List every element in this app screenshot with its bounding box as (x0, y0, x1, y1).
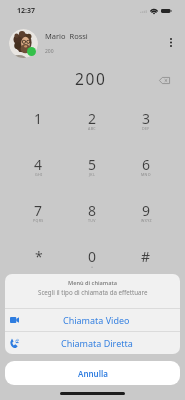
button[interactable]: Chiamata Diretta (5, 332, 180, 354)
staticText: DEF (142, 126, 150, 131)
button[interactable]: 5 (65, 145, 119, 191)
staticText: MNO (141, 172, 151, 177)
button[interactable]: Annulla (5, 361, 180, 385)
staticText: 200 (45, 48, 54, 55)
staticText: Menù di chiamata (68, 279, 118, 287)
staticText: Scegli il tipo di chiamata da effettuare (38, 288, 148, 296)
staticText: 8 (88, 201, 97, 220)
staticText: PQRS (33, 218, 44, 223)
staticText: ABC (88, 126, 96, 131)
staticText: 7 (34, 201, 43, 220)
button[interactable]: 4 (12, 145, 65, 191)
staticText: 12:37 (17, 6, 35, 16)
button[interactable]: 3 (119, 99, 173, 145)
staticText: Chiamata Video (63, 314, 130, 326)
button[interactable]: # (119, 237, 173, 283)
staticText: Chiamata Diretta (61, 337, 133, 349)
staticText: Mario Rossi (45, 31, 88, 41)
staticText: 0 (88, 247, 97, 266)
staticText: GHI (35, 172, 43, 177)
button[interactable]: 9 (119, 191, 173, 237)
button[interactable]: Backspace (157, 73, 171, 87)
button[interactable]: 7 (12, 191, 65, 237)
staticText: JKL (89, 172, 96, 177)
button[interactable]: 2 (65, 99, 119, 145)
staticText: Annulla (78, 368, 108, 379)
button[interactable]: 0 (65, 237, 119, 283)
staticText: 4 (34, 155, 43, 174)
button[interactable]: Chiamata Video (5, 309, 180, 331)
staticText: 5 (88, 155, 97, 174)
staticText: + (91, 264, 94, 269)
button[interactable]: * (12, 237, 65, 283)
button[interactable]: 1 (12, 99, 65, 145)
staticText: # (141, 247, 151, 266)
staticText: 1 (34, 109, 43, 128)
button[interactable]: 6 (119, 145, 173, 191)
staticText: 2 (88, 109, 97, 128)
button[interactable]: More options (162, 33, 180, 51)
staticText: * (35, 247, 43, 266)
staticText: 9 (142, 201, 151, 220)
staticText: 6 (142, 155, 151, 174)
button[interactable]: 8 (65, 191, 119, 237)
staticText: WXYZ (141, 218, 152, 223)
staticText: 200 (75, 68, 107, 89)
staticText: 3 (142, 109, 151, 128)
staticText: TUV (88, 218, 96, 223)
